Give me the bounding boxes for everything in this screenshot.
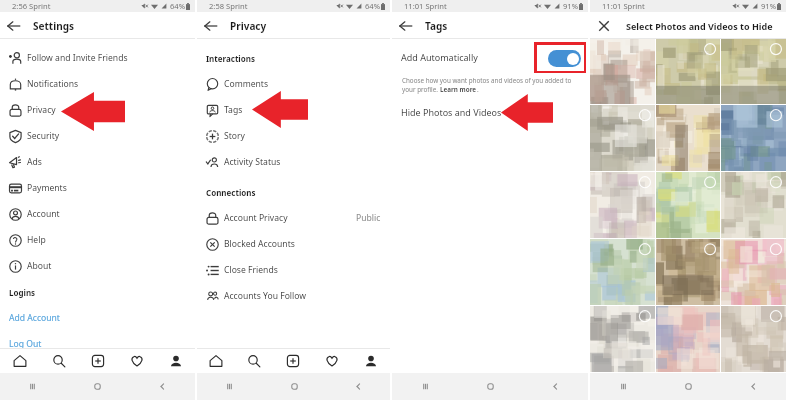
button[interactable]: Add Automatically xyxy=(548,50,581,67)
staticText: 11:01 Sprint xyxy=(404,1,447,11)
staticText: . xyxy=(477,85,479,94)
button[interactable]: Blocked Accounts xyxy=(197,231,390,257)
button[interactable]: Photo 7 xyxy=(590,172,655,238)
button[interactable]: Photo 13 xyxy=(590,306,655,372)
button[interactable]: Profile xyxy=(156,348,195,373)
button[interactable]: Activity xyxy=(117,348,156,373)
staticText: Choose how you want photos and videos of… xyxy=(402,76,572,85)
button[interactable]: Back xyxy=(2,12,25,39)
button[interactable]: Home xyxy=(262,373,326,400)
staticText: 64% xyxy=(170,1,185,11)
staticText: 64% xyxy=(365,1,380,11)
button[interactable]: Photo 11 xyxy=(656,239,720,305)
staticText: Payments xyxy=(27,182,67,194)
button[interactable]: Tags xyxy=(197,97,390,123)
button[interactable]: Photo 12 xyxy=(721,239,786,305)
staticText: Connections xyxy=(206,187,256,198)
staticText: 91% xyxy=(563,1,578,11)
button[interactable]: Hide Photos and Videos xyxy=(392,99,588,125)
button[interactable]: Add Automatically xyxy=(392,44,588,70)
button[interactable]: New post xyxy=(273,348,312,373)
button[interactable]: Story xyxy=(197,123,390,149)
staticText: Tags xyxy=(425,19,448,33)
staticText: Public xyxy=(356,212,381,224)
button[interactable]: Search xyxy=(235,348,273,373)
button[interactable]: Back xyxy=(394,12,417,39)
staticText: Story xyxy=(224,130,245,142)
staticText: 11:01 Sprint xyxy=(602,1,645,11)
staticText: Accounts You Follow xyxy=(224,290,307,302)
button[interactable]: Photo 2 xyxy=(656,39,720,104)
button[interactable]: Back xyxy=(199,12,222,39)
button[interactable]: Photo 18 xyxy=(721,373,786,399)
staticText: Activity Status xyxy=(224,156,281,168)
staticText: Blocked Accounts xyxy=(224,238,295,250)
button[interactable]: Add Account xyxy=(0,305,195,331)
button[interactable]: Recents xyxy=(197,373,262,400)
staticText: 2:56 Sprint xyxy=(12,1,51,11)
staticText: Interactions xyxy=(206,53,255,64)
button[interactable]: Back xyxy=(130,373,195,400)
button[interactable]: Photo 1 xyxy=(590,39,655,104)
staticText: Add Account xyxy=(9,312,60,324)
button[interactable]: Payments xyxy=(0,175,195,201)
button[interactable]: Photo 4 xyxy=(590,105,655,171)
button[interactable]: Comments xyxy=(197,71,390,97)
staticText: Comments xyxy=(224,78,269,90)
button[interactable]: Search xyxy=(39,348,78,373)
button[interactable]: Photo 9 xyxy=(721,172,786,238)
button[interactable]: Help xyxy=(0,227,195,253)
button[interactable]: New post xyxy=(78,348,117,373)
staticText: Tags xyxy=(224,104,243,116)
button[interactable]: Notifications xyxy=(0,71,195,97)
button[interactable]: Activity xyxy=(312,348,351,373)
button[interactable]: Back xyxy=(523,373,588,400)
button[interactable]: Log Out xyxy=(0,331,195,357)
button[interactable]: Photo 14 xyxy=(656,306,720,372)
button[interactable]: Privacy xyxy=(0,97,195,123)
staticText: Hide Photos and Videos xyxy=(401,106,502,118)
button[interactable]: Profile xyxy=(351,348,390,373)
staticText: Notifications xyxy=(27,78,79,90)
button[interactable]: Ads xyxy=(0,149,195,175)
staticText: 91% xyxy=(761,1,776,11)
staticText: Log Out xyxy=(9,338,42,350)
staticText: Privacy xyxy=(27,104,56,116)
button[interactable]: Back xyxy=(721,373,786,400)
staticText: Select Photos and Videos to Hide xyxy=(626,20,773,32)
staticText: Settings xyxy=(33,19,74,33)
button[interactable]: About xyxy=(0,253,195,279)
button[interactable]: Close xyxy=(592,12,615,39)
button[interactable]: Recents xyxy=(392,373,458,400)
staticText: About xyxy=(27,260,52,272)
staticText: Close Friends xyxy=(224,264,278,276)
staticText: Help xyxy=(27,234,46,246)
button[interactable]: Photo 6 xyxy=(721,105,786,171)
button[interactable]: Follow and Invite Friends xyxy=(0,45,195,71)
button[interactable]: Photo 8 xyxy=(656,172,720,238)
button[interactable]: Photo 16 xyxy=(590,373,655,399)
button[interactable]: Activity Status xyxy=(197,149,390,175)
button[interactable]: Photo 10 xyxy=(590,239,655,305)
button[interactable]: Account xyxy=(0,201,195,227)
staticText: Ads xyxy=(27,156,42,168)
staticText: Logins xyxy=(9,287,36,298)
button[interactable]: Photo 5 xyxy=(656,105,720,171)
button[interactable]: Home xyxy=(656,373,721,400)
button[interactable]: Accounts You Follow xyxy=(197,283,390,309)
button[interactable]: Photo 15 xyxy=(721,306,786,372)
staticText: Add Automatically xyxy=(401,51,478,63)
button[interactable]: Account Privacy xyxy=(197,205,390,231)
button[interactable]: Photo 3 xyxy=(721,39,786,104)
button[interactable]: Home xyxy=(65,373,130,400)
button[interactable]: Back xyxy=(326,373,390,400)
button[interactable]: Home xyxy=(197,348,235,373)
button[interactable]: Close Friends xyxy=(197,257,390,283)
button[interactable]: Photo 17 xyxy=(656,373,720,399)
button[interactable]: Recents xyxy=(590,373,656,400)
button[interactable]: Learn more xyxy=(440,85,477,94)
button[interactable]: Security xyxy=(0,123,195,149)
button[interactable]: Home xyxy=(0,348,39,373)
button[interactable]: Home xyxy=(458,373,523,400)
button[interactable]: Recents xyxy=(0,373,65,400)
